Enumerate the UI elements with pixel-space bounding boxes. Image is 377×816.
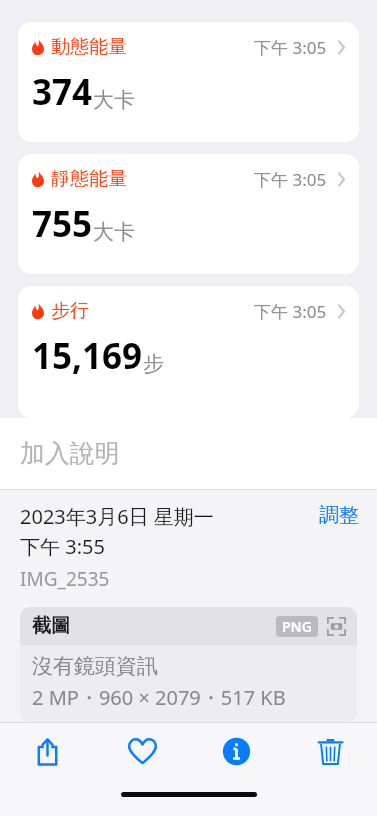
- button[interactable]: Info: [189, 723, 283, 779]
- staticText: PNG: [282, 617, 312, 636]
- staticText: 下午 3:55: [20, 533, 105, 560]
- staticText: 加入說明: [20, 438, 120, 469]
- staticText: 步行: [51, 299, 89, 323]
- staticText: 沒有鏡頭資訊: [32, 653, 158, 679]
- staticText: 下午 3:05: [254, 168, 327, 191]
- staticText: 374: [32, 68, 93, 116]
- staticText: 2023年3月6日 星期一: [20, 503, 214, 530]
- button[interactable]: 調整: [319, 503, 359, 528]
- staticText: 步: [143, 351, 164, 377]
- staticText: IMG_2535: [20, 566, 110, 592]
- staticText: 大卡: [93, 219, 135, 245]
- staticText: 2 MP・960 × 2079・517 KB: [32, 684, 286, 711]
- staticText: 動態能量: [51, 35, 127, 59]
- staticText: 調整: [319, 503, 359, 528]
- button[interactable]: Delete: [283, 723, 377, 779]
- button[interactable]: 動態能量: [18, 22, 359, 142]
- staticText: 755: [32, 200, 93, 248]
- button[interactable]: Favorite: [95, 723, 189, 779]
- staticText: 截圖: [32, 614, 70, 638]
- staticText: 下午 3:05: [254, 300, 327, 323]
- button[interactable]: 步行: [18, 286, 359, 418]
- staticText: 15,169: [32, 332, 143, 380]
- button[interactable]: 靜態能量: [18, 154, 359, 274]
- staticText: 大卡: [93, 87, 135, 113]
- button[interactable]: 加入說明: [0, 418, 377, 489]
- staticText: 靜態能量: [51, 167, 127, 191]
- button[interactable]: 截圖: [20, 607, 357, 722]
- staticText: 下午 3:05: [254, 36, 327, 59]
- button[interactable]: Share: [0, 723, 95, 779]
